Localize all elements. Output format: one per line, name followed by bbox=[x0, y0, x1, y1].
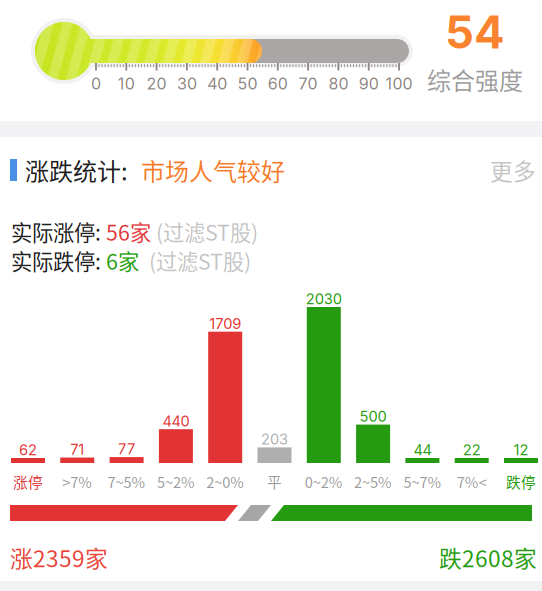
staticText: 90 bbox=[359, 74, 379, 93]
staticText: 2~0% bbox=[206, 471, 244, 492]
staticText: 54 bbox=[445, 5, 505, 59]
staticText: 40 bbox=[207, 74, 227, 93]
staticText: 1709 bbox=[209, 315, 241, 332]
staticText: (过滤ST股) bbox=[151, 216, 258, 247]
staticText: 涨跌统计: bbox=[25, 153, 128, 187]
staticText: 2030 bbox=[306, 290, 342, 308]
staticText: 71 bbox=[70, 440, 84, 458]
staticText: 0~2% bbox=[305, 471, 343, 492]
staticText: 500 bbox=[360, 408, 387, 425]
staticText: 平 bbox=[267, 471, 282, 492]
staticText: 市场人气较好 bbox=[141, 153, 285, 187]
staticText: (过滤ST股) bbox=[139, 245, 251, 276]
button[interactable]: 54 bbox=[415, 5, 535, 97]
staticText: 2~5% bbox=[354, 471, 392, 492]
staticText: >7% bbox=[62, 471, 92, 492]
staticText: 12 bbox=[513, 441, 528, 459]
staticText: 涨停 bbox=[13, 471, 43, 492]
staticText: 100 bbox=[385, 74, 412, 93]
staticText: 30 bbox=[177, 74, 197, 93]
staticText: 实际跌停: bbox=[11, 245, 101, 276]
staticText: 44 bbox=[413, 441, 431, 459]
staticText: 20 bbox=[147, 74, 167, 93]
staticText: 涨2359家 bbox=[10, 541, 108, 574]
staticText: 跌停 bbox=[506, 471, 536, 492]
staticText: 80 bbox=[328, 74, 348, 93]
staticText: 77 bbox=[118, 440, 135, 458]
staticText: 综合强度 bbox=[427, 62, 523, 97]
staticText: 22 bbox=[463, 441, 481, 459]
staticText: 6家 bbox=[101, 245, 139, 276]
staticText: 56家 bbox=[101, 216, 151, 247]
staticText: 5~7% bbox=[403, 471, 441, 492]
staticText: 实际涨停: bbox=[11, 216, 101, 247]
staticText: 更多 bbox=[490, 154, 536, 186]
staticText: 7~5% bbox=[108, 471, 146, 492]
staticText: 5~2% bbox=[157, 471, 195, 492]
staticText: 203 bbox=[261, 430, 288, 448]
staticText: 跌2608家 bbox=[439, 541, 537, 574]
staticText: 60 bbox=[268, 74, 288, 93]
staticText: 62 bbox=[19, 441, 37, 459]
button[interactable]: 涨跌统计: bbox=[0, 146, 542, 194]
staticText: 0 bbox=[91, 74, 101, 93]
staticText: 70 bbox=[299, 74, 318, 93]
staticText: 50 bbox=[237, 74, 257, 93]
staticText: 10 bbox=[118, 74, 135, 93]
staticText: 440 bbox=[162, 412, 189, 430]
staticText: 7%< bbox=[457, 471, 487, 492]
